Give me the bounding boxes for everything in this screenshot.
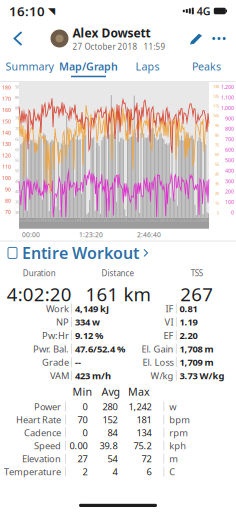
staticText: 134	[137, 426, 152, 439]
staticText: Laps	[135, 59, 159, 73]
staticText: 70	[78, 413, 88, 426]
staticText: 267	[180, 281, 213, 306]
staticText: 25	[215, 191, 219, 196]
staticText: 181	[137, 413, 152, 426]
staticText: 400	[225, 167, 234, 174]
staticText: 152	[103, 413, 118, 426]
button[interactable]: Laps	[118, 57, 177, 79]
staticText: 30	[15, 210, 19, 215]
staticText: 334 w	[75, 316, 100, 328]
staticText: 15	[215, 200, 219, 206]
button[interactable]: Map/Graph	[59, 57, 118, 79]
staticText: 50	[15, 168, 19, 173]
staticText: 1.19	[179, 316, 197, 328]
staticText: 800	[225, 125, 234, 132]
staticText: 105	[213, 113, 219, 118]
staticText: NP	[56, 316, 69, 328]
staticText: 180	[2, 84, 11, 91]
staticText: 170	[2, 95, 11, 102]
staticText: 65	[215, 152, 219, 157]
staticText: 160	[2, 106, 11, 114]
staticText: 16:10	[9, 2, 45, 20]
staticText: 72	[142, 452, 152, 465]
staticText: 27 October 2018 11:59	[72, 41, 165, 52]
staticText: Power	[34, 400, 61, 413]
staticText: 35	[215, 181, 219, 186]
staticText: 9.12 %	[75, 329, 103, 342]
staticText: Alex Dowsett	[72, 25, 150, 41]
staticText: 1,708 m	[179, 343, 213, 355]
staticText: Max	[128, 384, 150, 399]
staticText: 1:23:20	[79, 230, 103, 239]
staticText: 150	[2, 118, 11, 125]
staticText: C	[169, 465, 175, 478]
staticText: 1,200	[221, 83, 234, 90]
staticText: Duration	[23, 268, 56, 278]
staticText: 1,000	[221, 104, 234, 111]
staticText: 70	[5, 208, 11, 216]
staticText: 0.00	[70, 439, 88, 452]
staticText: VI	[164, 316, 173, 328]
staticText: 54	[108, 452, 118, 465]
staticText: 140	[2, 129, 11, 136]
staticText: 700	[225, 136, 234, 143]
staticText: 900	[225, 115, 234, 122]
staticText: Peaks	[192, 59, 221, 73]
staticText: Avg	[101, 384, 120, 399]
staticText: Min	[72, 384, 92, 399]
staticText: 161 km	[85, 281, 150, 306]
staticText: El. Gain	[141, 343, 173, 355]
staticText: 100	[2, 174, 11, 182]
staticText: 75.2	[134, 439, 152, 452]
staticText: 55	[15, 157, 19, 163]
staticText: 300	[225, 177, 234, 185]
staticText: 40	[15, 189, 19, 194]
staticText: El. Loss	[142, 356, 173, 368]
button[interactable]: Edit	[185, 22, 207, 54]
staticText: 1,242	[129, 400, 152, 413]
staticText: w	[169, 400, 176, 413]
staticText: Pw:Hr	[42, 329, 69, 342]
button[interactable]: Back	[5, 22, 31, 54]
staticText: 5	[217, 210, 219, 215]
staticText: 95	[215, 123, 219, 128]
staticText: kph	[169, 439, 186, 452]
staticText: Grade	[42, 356, 69, 368]
staticText: 60	[15, 147, 19, 152]
staticText: Temperature	[4, 465, 61, 478]
staticText: EF	[163, 329, 173, 342]
staticText: 100	[225, 198, 234, 206]
button[interactable]: More options	[207, 22, 231, 54]
staticText: 500	[225, 157, 234, 164]
staticText: TSS	[191, 268, 203, 278]
staticText: bpm	[169, 413, 190, 426]
staticText: 85	[215, 132, 219, 138]
staticText: --	[75, 356, 81, 368]
staticText: 70	[15, 126, 19, 131]
staticText: m	[169, 452, 178, 465]
staticText: 84	[108, 426, 118, 439]
staticText: 45	[215, 171, 219, 177]
staticText: 00:00	[22, 230, 40, 239]
staticText: 65	[15, 137, 19, 142]
staticText: Summary	[5, 59, 53, 73]
staticText: 130	[2, 140, 11, 148]
staticText: 0	[83, 400, 88, 413]
staticText: 115	[213, 103, 219, 109]
staticText: 0	[83, 426, 88, 439]
staticText: IF	[165, 302, 173, 315]
staticText: VAM	[50, 369, 69, 382]
staticText: 0	[231, 209, 234, 216]
staticText: 4:02:20	[7, 281, 72, 306]
staticText: Pwr. Bal.	[33, 343, 69, 355]
staticText: 75	[15, 116, 19, 121]
button[interactable]: Peaks	[177, 57, 236, 79]
button[interactable]: Entire Workout	[0, 242, 236, 264]
staticText: Heart Rate	[16, 413, 61, 426]
staticText: 55	[215, 162, 219, 167]
staticText: Entire Workout	[22, 242, 139, 263]
staticText: 6	[147, 465, 152, 478]
button[interactable]: Summary	[0, 57, 59, 79]
staticText: 39.8	[100, 439, 118, 452]
staticText: 2	[83, 465, 88, 478]
